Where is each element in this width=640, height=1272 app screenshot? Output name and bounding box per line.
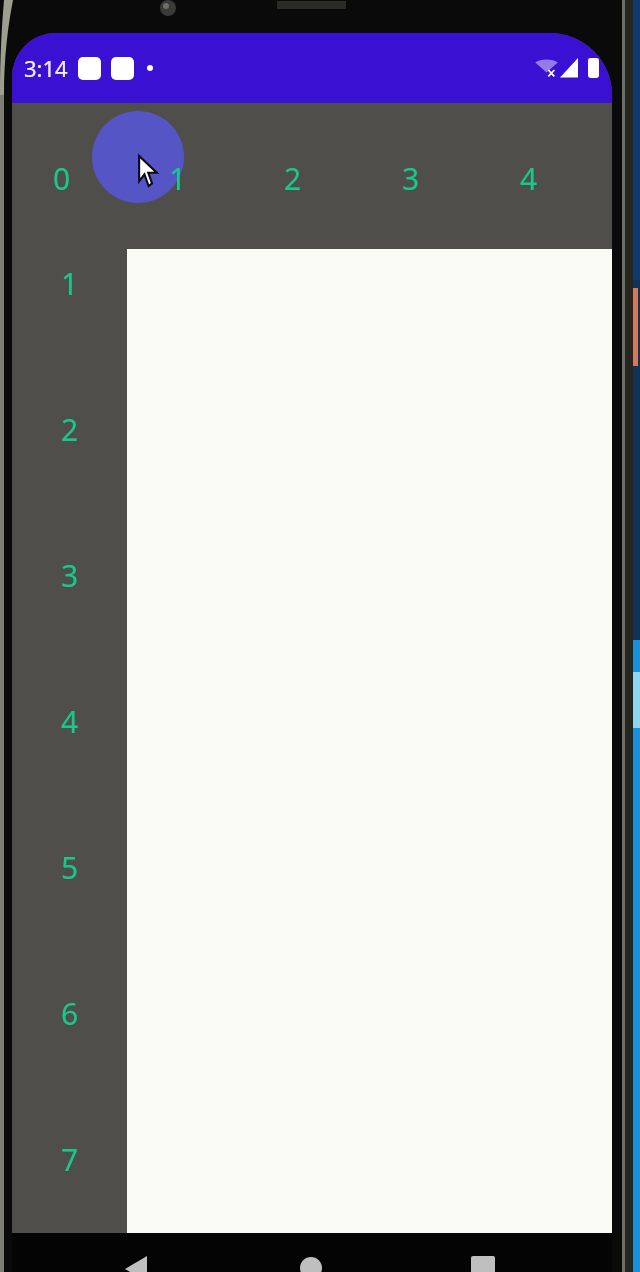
staticText: 2 — [284, 158, 302, 199]
staticText: 4 — [520, 158, 538, 199]
button[interactable]: Recents — [471, 1256, 495, 1272]
staticText: 6 — [61, 993, 79, 1034]
staticText: 4 — [61, 701, 79, 742]
staticText: 3 — [61, 555, 79, 596]
button[interactable]: Touch point — [92, 111, 184, 203]
button[interactable]: Back — [125, 1256, 147, 1272]
staticText: 0 — [53, 158, 71, 199]
staticText: 2 — [61, 409, 79, 450]
staticText: 1 — [169, 158, 187, 199]
staticText: 5 — [61, 847, 79, 888]
staticText: 1 — [61, 263, 79, 304]
staticText: 3:14 — [24, 53, 68, 83]
staticText: 3 — [402, 158, 420, 199]
button[interactable]: Home — [300, 1257, 322, 1272]
staticText: 7 — [61, 1139, 79, 1180]
